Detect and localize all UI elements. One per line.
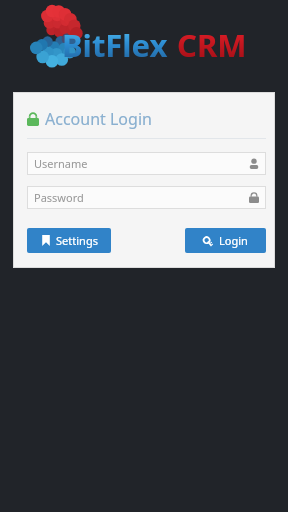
other: Settings [41, 235, 51, 246]
button[interactable]: Password [27, 186, 266, 209]
staticText: Settings [56, 233, 98, 248]
other: Login [204, 235, 214, 246]
button[interactable]: Login [185, 228, 266, 253]
staticText: Password [34, 190, 249, 205]
staticText: Login [219, 233, 248, 248]
staticText: Username [34, 156, 249, 171]
button[interactable]: Username [27, 152, 266, 175]
button[interactable]: Settings [27, 228, 111, 253]
staticText: BitFlex [62, 24, 168, 66]
staticText: Account Login [45, 108, 152, 130]
staticText: CRM [177, 24, 247, 66]
